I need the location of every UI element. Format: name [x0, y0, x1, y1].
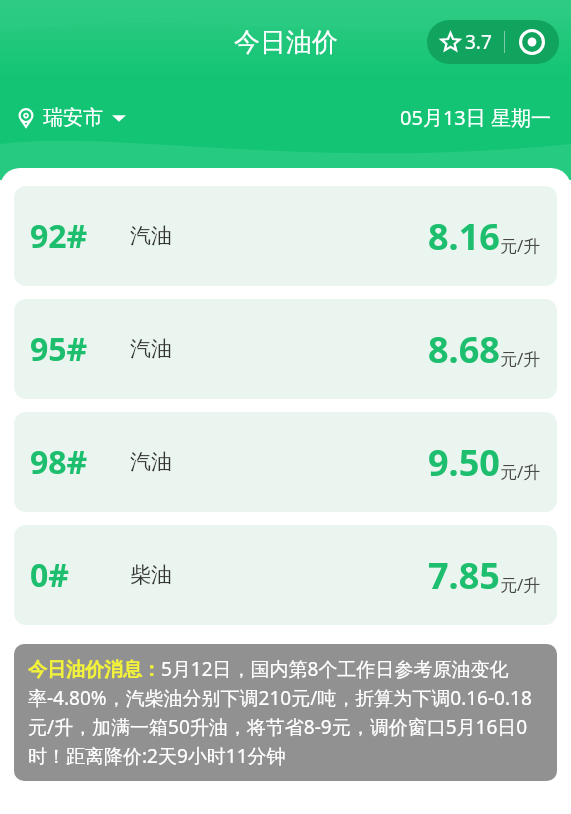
button[interactable]: 98# — [14, 412, 557, 512]
staticText: 今日油价 — [234, 26, 338, 59]
button[interactable]: 瑞安市 — [16, 105, 126, 130]
staticText: 今日油价消息：5月12日，国内第8个工作日参考原油变化率-4.80%，汽柴油分别… — [28, 656, 543, 769]
staticText: 元/升 — [500, 460, 541, 483]
staticText: 瑞安市 — [43, 105, 103, 130]
staticText: 汽油 — [130, 449, 172, 475]
staticText: 元/升 — [500, 573, 541, 596]
staticText: 元/升 — [500, 234, 541, 257]
staticText: 8.16 — [428, 212, 500, 261]
staticText: 3.7 — [465, 29, 492, 55]
staticText: 9.50 — [428, 438, 500, 487]
button[interactable]: 95# — [14, 299, 557, 399]
staticText: 汽油 — [130, 336, 172, 362]
staticText: 98# — [30, 440, 88, 484]
button[interactable]: 92# — [14, 186, 557, 286]
staticText: 柴油 — [130, 562, 172, 588]
staticText: 05月13日 星期一 — [400, 104, 551, 131]
button[interactable]: Locate — [505, 20, 559, 64]
button[interactable]: 今日油价消息：5月12日，国内第8个工作日参考原油变化率-4.80%，汽柴油分别… — [14, 644, 557, 781]
staticText: 7.85 — [428, 551, 500, 600]
staticText: 92# — [30, 214, 88, 258]
staticText: 元/升 — [500, 347, 541, 370]
button[interactable]: 0# — [14, 525, 557, 625]
staticText: 汽油 — [130, 223, 172, 249]
staticText: 8.68 — [428, 325, 500, 374]
button[interactable]: 3.7 — [427, 20, 504, 64]
staticText: 0# — [30, 553, 69, 597]
staticText: 95# — [30, 327, 88, 371]
